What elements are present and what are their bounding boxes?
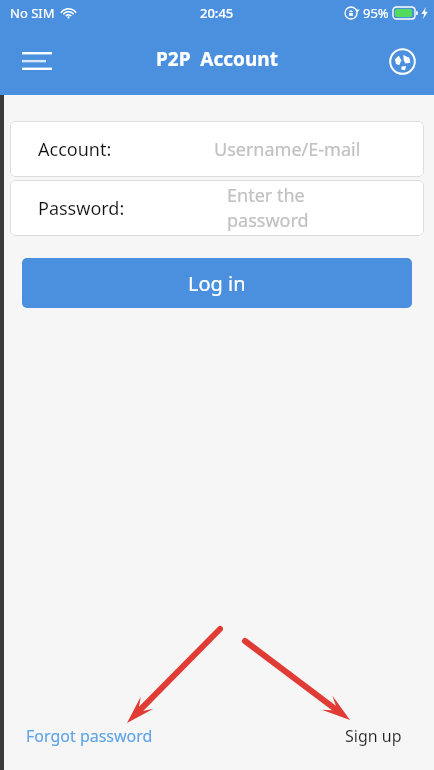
button[interactable]: Sign up bbox=[339, 719, 408, 753]
staticText: No SIM bbox=[10, 4, 55, 22]
button[interactable]: Forgot password bbox=[20, 719, 159, 753]
staticText: Log in bbox=[188, 270, 246, 297]
button[interactable]: Menu bbox=[14, 38, 60, 84]
staticText: P2P Account bbox=[156, 46, 278, 72]
staticText: 20:45 bbox=[200, 4, 234, 22]
staticText: Forgot password bbox=[26, 725, 153, 747]
button[interactable]: Account: bbox=[10, 121, 424, 177]
button[interactable]: Log in bbox=[22, 258, 412, 308]
staticText: Enter the password bbox=[227, 183, 364, 233]
staticText: Username/E-mail bbox=[214, 137, 361, 162]
button[interactable]: Password: bbox=[10, 180, 424, 236]
staticText: Account: bbox=[38, 137, 112, 162]
staticText: Password: bbox=[38, 196, 125, 221]
button[interactable]: Language bbox=[380, 39, 424, 83]
staticText: Sign up bbox=[345, 725, 402, 747]
staticText: 95% bbox=[363, 4, 389, 22]
